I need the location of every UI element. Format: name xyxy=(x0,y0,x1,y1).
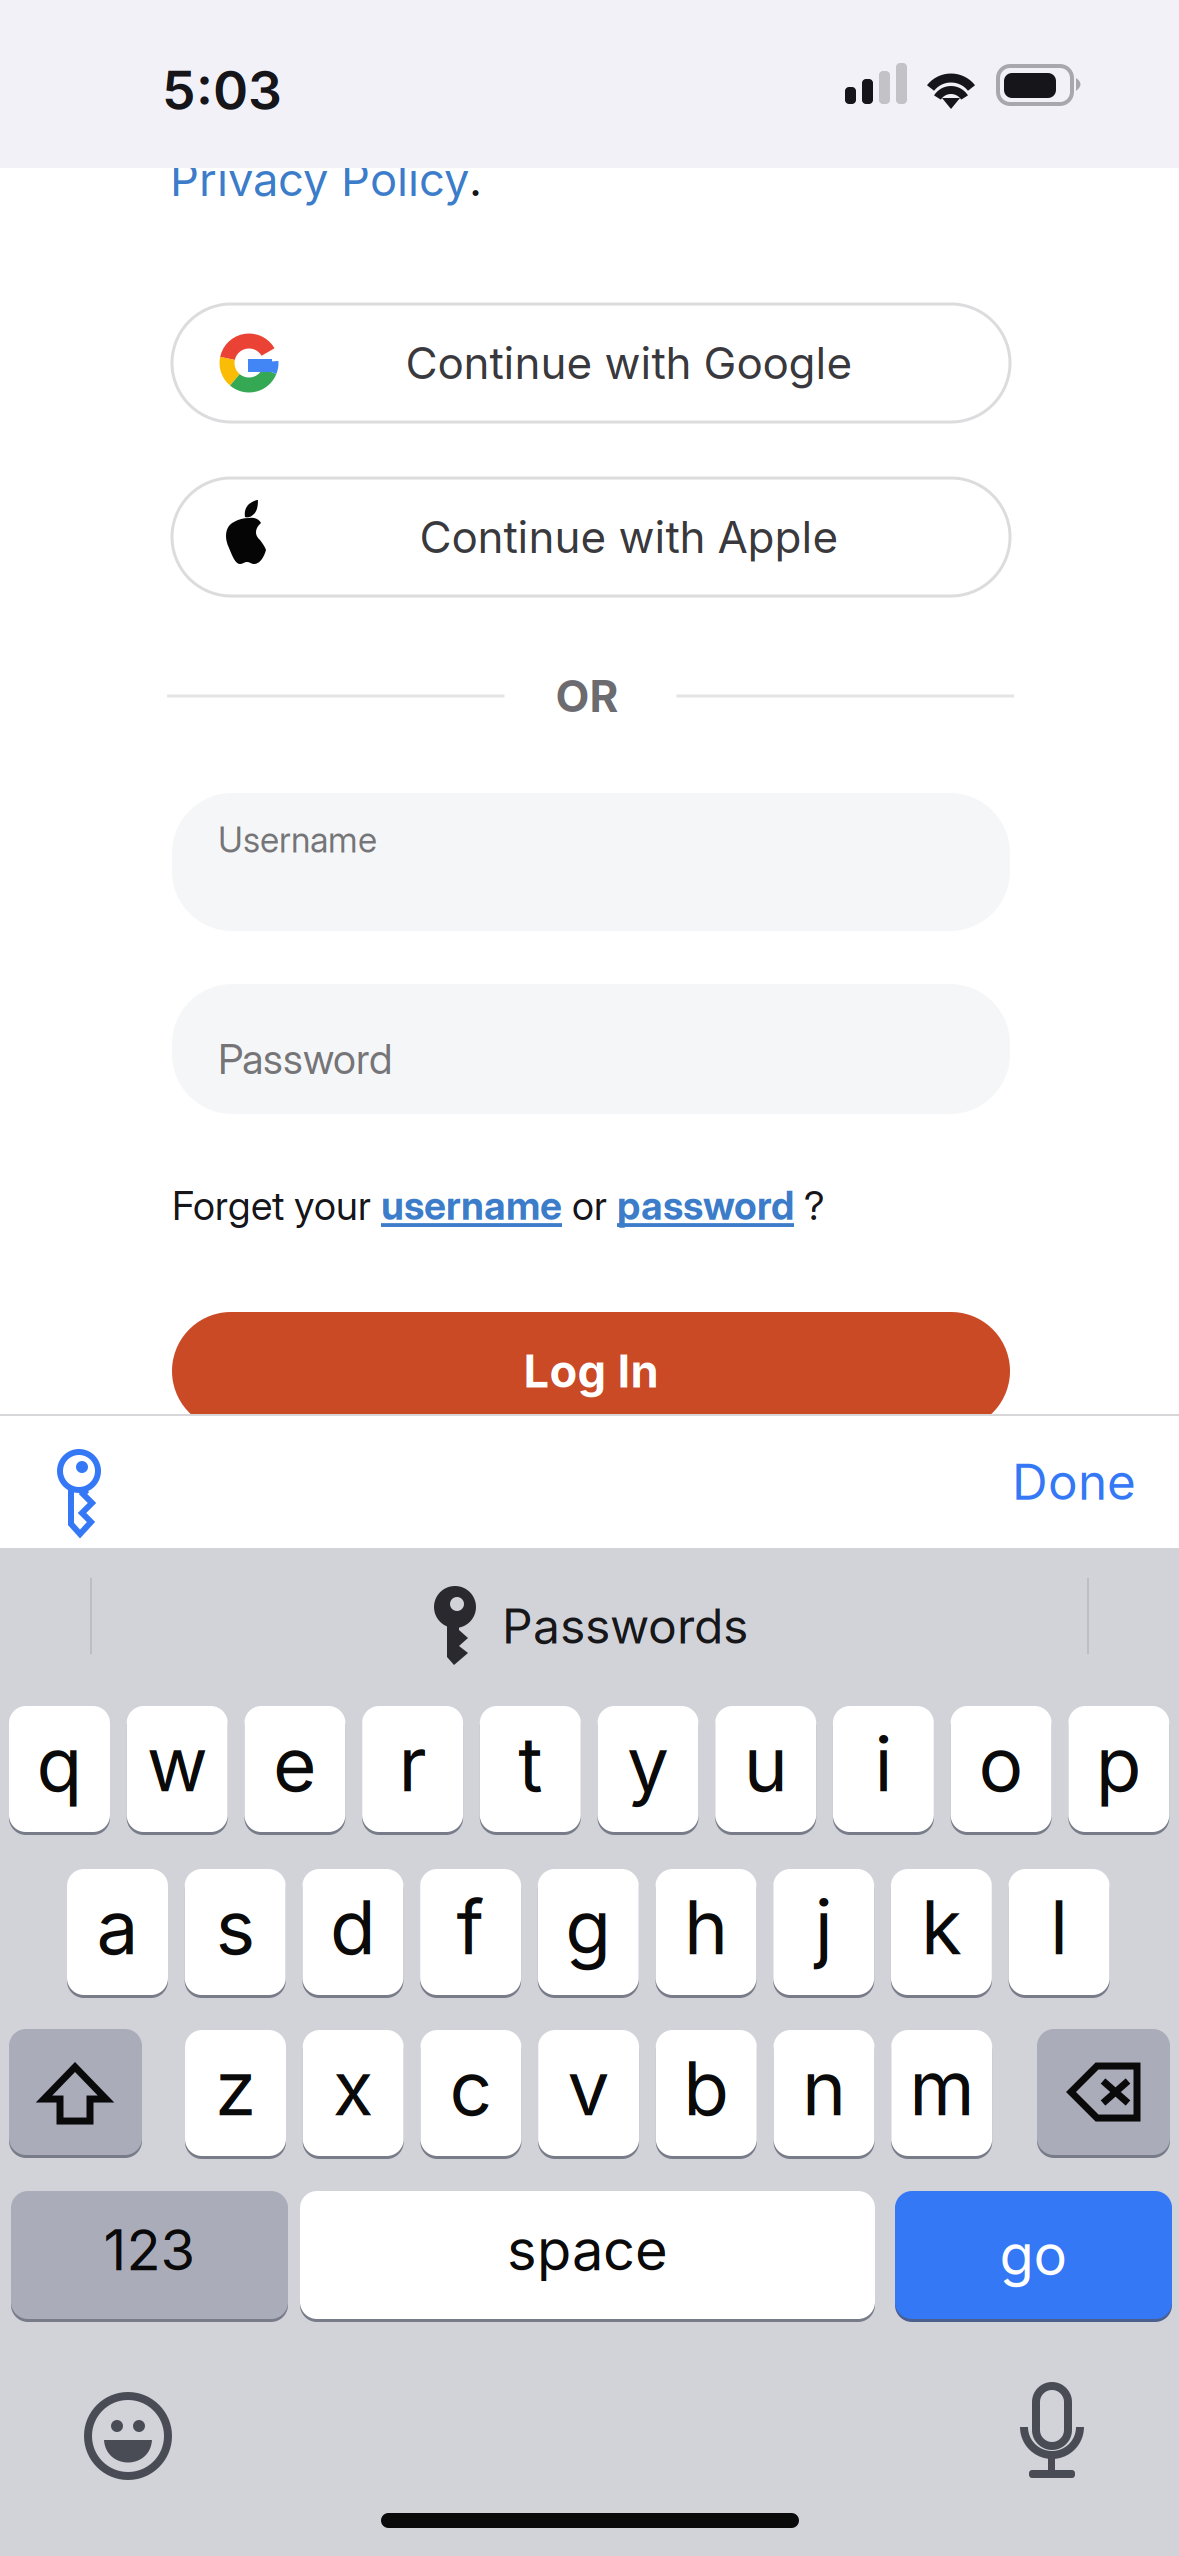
button[interactable]: w xyxy=(127,1706,228,1832)
button[interactable]: y xyxy=(597,1706,698,1832)
button[interactable]: g xyxy=(538,1869,639,1995)
button[interactable]: Dictate xyxy=(1021,2385,1083,2479)
button[interactable]: Passwords xyxy=(434,1586,780,1666)
button[interactable]: space xyxy=(300,2191,875,2319)
button[interactable]: q xyxy=(9,1706,110,1832)
staticText: p xyxy=(1096,1719,1142,1809)
staticText: Password xyxy=(218,1034,392,1084)
staticText: go xyxy=(999,2221,1067,2289)
staticText: n xyxy=(802,2043,846,2133)
staticText: w xyxy=(147,1719,208,1809)
button[interactable]: go xyxy=(895,2191,1172,2319)
staticText: m xyxy=(909,2043,974,2133)
staticText: c xyxy=(449,2043,492,2133)
staticText: y xyxy=(627,1719,669,1809)
button[interactable]: c xyxy=(420,2030,521,2156)
button[interactable]: v xyxy=(538,2030,639,2156)
staticText: e xyxy=(273,1719,317,1809)
button[interactable]: d xyxy=(302,1869,403,1995)
button[interactable]: t xyxy=(480,1706,581,1832)
staticText: Privacy Policy xyxy=(170,152,469,207)
staticText: q xyxy=(36,1719,82,1809)
staticText: 5:03 xyxy=(162,58,282,122)
button[interactable]: Delete xyxy=(1037,2029,1170,2155)
button[interactable]: password xyxy=(617,1182,794,1229)
button[interactable]: n xyxy=(773,2030,874,2156)
staticText: Username xyxy=(218,819,377,861)
button[interactable]: m xyxy=(891,2030,992,2156)
button[interactable]: Log In xyxy=(172,1312,1010,1430)
staticText: g xyxy=(565,1882,611,1972)
staticText: Continue with Google xyxy=(405,336,852,390)
staticText: Forget your xyxy=(172,1182,381,1230)
staticText: . xyxy=(469,152,482,207)
button[interactable]: Done xyxy=(1012,1452,1136,1512)
staticText: d xyxy=(330,1882,376,1972)
button[interactable]: z xyxy=(185,2030,286,2156)
staticText: Done xyxy=(1012,1452,1136,1512)
button[interactable]: p xyxy=(1068,1706,1169,1832)
staticText: a xyxy=(96,1882,138,1972)
staticText: Log In xyxy=(523,1344,658,1398)
staticText: j xyxy=(815,1882,833,1972)
button[interactable]: r xyxy=(362,1706,463,1832)
staticText: f xyxy=(457,1882,485,1972)
staticText: h xyxy=(684,1882,728,1972)
button[interactable]: Continue with Google xyxy=(172,304,1010,422)
staticText: k xyxy=(921,1882,962,1972)
button[interactable]: username xyxy=(381,1182,562,1229)
button[interactable]: 123 xyxy=(11,2191,288,2319)
staticText: u xyxy=(744,1719,788,1809)
button[interactable]: a xyxy=(67,1869,168,1995)
staticText: t xyxy=(518,1719,542,1809)
button[interactable]: l xyxy=(1009,1869,1110,1995)
button[interactable]: Passwords xyxy=(56,1446,108,1542)
staticText: o xyxy=(979,1719,1024,1809)
staticText: v xyxy=(568,2043,610,2133)
staticText: or xyxy=(562,1182,617,1230)
button[interactable]: Privacy Policy xyxy=(170,152,469,207)
button[interactable]: k xyxy=(891,1869,992,1995)
staticText: username xyxy=(381,1182,562,1229)
staticText: OR xyxy=(555,669,618,723)
staticText: ? xyxy=(794,1182,825,1230)
staticText: space xyxy=(507,2216,668,2284)
staticText: b xyxy=(683,2043,729,2133)
staticText: l xyxy=(1050,1882,1068,1972)
staticText: Passwords xyxy=(502,1597,748,1655)
button[interactable]: Emoji xyxy=(88,2396,168,2476)
staticText: Continue with Apple xyxy=(419,510,838,564)
button[interactable]: x xyxy=(303,2030,404,2156)
button[interactable]: h xyxy=(655,1869,756,1995)
staticText: i xyxy=(874,1719,892,1809)
staticText: x xyxy=(333,2043,374,2133)
button[interactable]: b xyxy=(656,2030,757,2156)
button[interactable]: j xyxy=(773,1869,874,1995)
staticText: z xyxy=(215,2043,256,2133)
button[interactable]: f xyxy=(420,1869,521,1995)
button[interactable]: o xyxy=(951,1706,1052,1832)
staticText: password xyxy=(617,1182,794,1229)
staticText: 123 xyxy=(103,2216,195,2284)
button[interactable]: u xyxy=(715,1706,816,1832)
button[interactable]: Shift xyxy=(9,2029,142,2155)
staticText: s xyxy=(216,1882,255,1972)
button[interactable]: Continue with Apple xyxy=(172,478,1010,596)
staticText: r xyxy=(399,1719,427,1809)
button[interactable]: e xyxy=(244,1706,345,1832)
button[interactable]: i xyxy=(833,1706,934,1832)
button[interactable]: s xyxy=(185,1869,286,1995)
